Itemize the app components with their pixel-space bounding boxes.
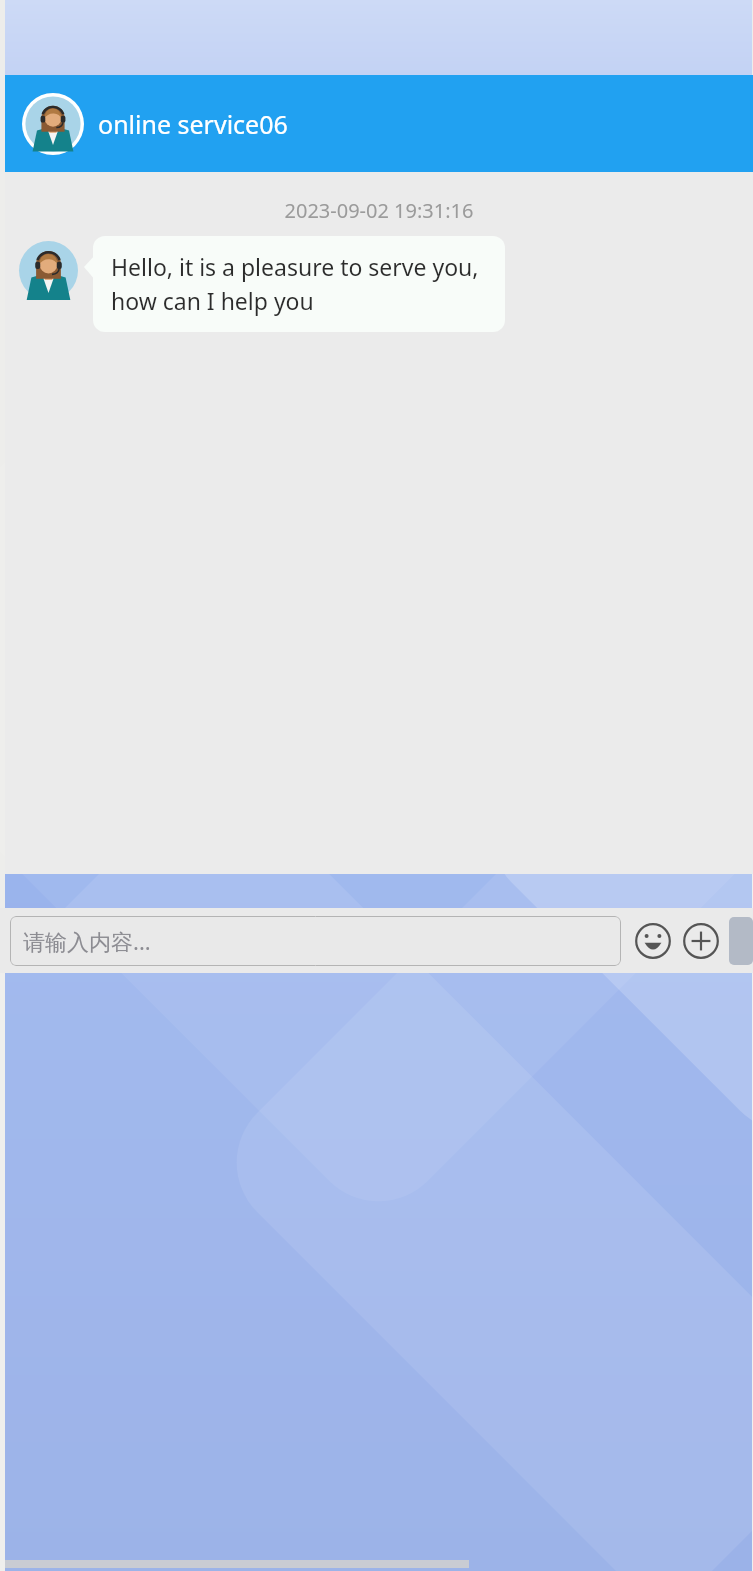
button[interactable]: online service06 (5, 75, 753, 172)
staticText: 请输入内容... (23, 926, 151, 956)
button[interactable]: Send (729, 917, 753, 965)
staticText: online service06 (98, 107, 288, 141)
staticText: Hello, it is a pleasure to serve you, ho… (111, 251, 487, 317)
button[interactable]: Hello, it is a pleasure to serve you, ho… (93, 236, 505, 332)
button[interactable]: 请输入内容... (10, 916, 621, 966)
button[interactable]: Emoji (630, 918, 676, 964)
staticText: 2023-09-02 19:31:16 (5, 197, 753, 224)
button[interactable]: More (678, 918, 724, 964)
